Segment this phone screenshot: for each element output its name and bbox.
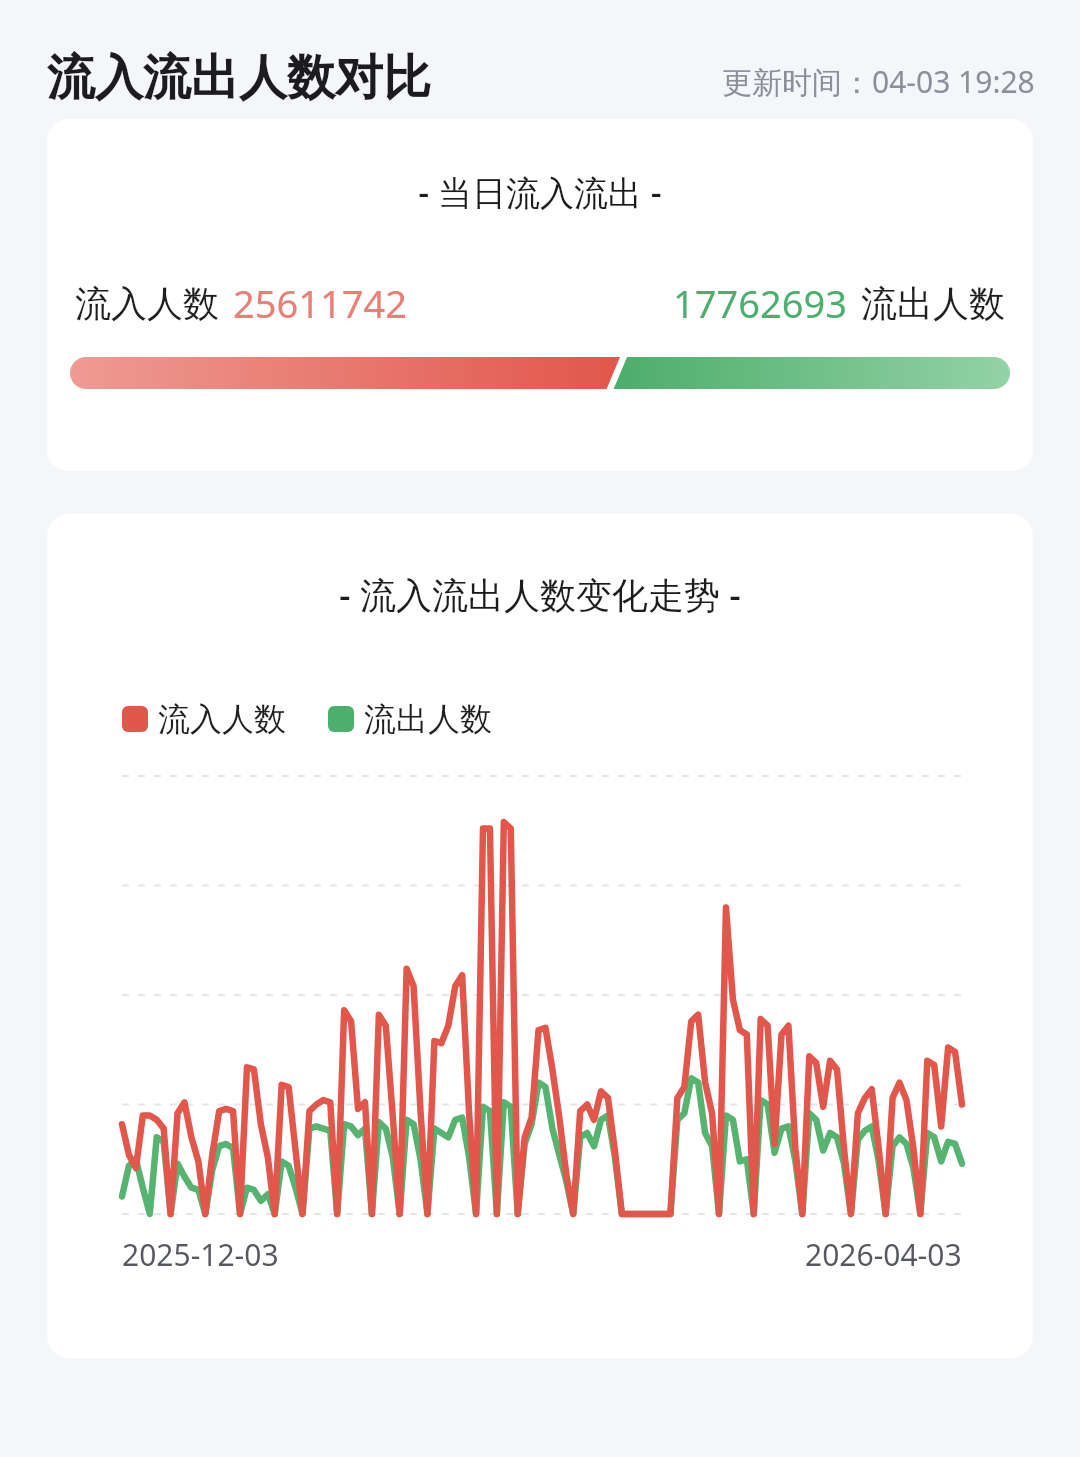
staticText: - 流入流出人数变化走势 - [47, 570, 1033, 619]
button[interactable]: 流入人数 [122, 699, 492, 739]
button[interactable]: - 流入流出人数变化走势 - [47, 514, 1033, 1358]
other: 流入流出人数变化走势图 [122, 776, 962, 1214]
staticText: 流出人数 [861, 281, 1005, 326]
staticText: 17762693 [673, 277, 847, 329]
staticText: 更新时间：04-03 19:28 [722, 61, 1035, 102]
staticText: 2025-12-03 [122, 1234, 279, 1275]
staticText: 流入流出人数对比 [47, 48, 431, 108]
staticText: - 当日流入流出 - [47, 169, 1033, 215]
staticText: 25611742 [233, 277, 407, 329]
staticText: 2026-04-03 [805, 1234, 962, 1275]
button[interactable]: - 当日流入流出 - [47, 119, 1033, 471]
staticText: 流入人数 [75, 281, 219, 326]
staticText: 流出人数 [364, 699, 492, 739]
staticText: 流入人数 [158, 699, 286, 739]
